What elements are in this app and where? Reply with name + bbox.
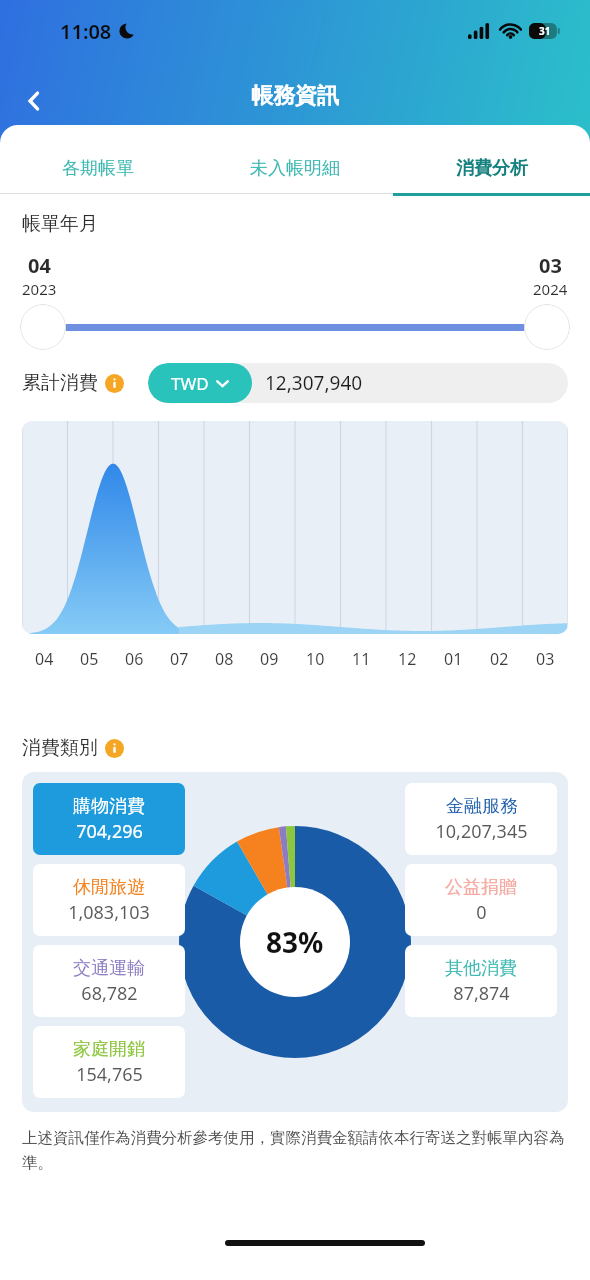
button[interactable]: 金融服務 <box>405 783 557 855</box>
staticText: 154,765 <box>76 1062 143 1087</box>
staticText: 87,874 <box>453 981 510 1006</box>
staticText: 04 <box>35 648 54 670</box>
staticText: 06 <box>125 648 144 670</box>
button[interactable]: 家庭開銷 <box>33 1026 185 1098</box>
staticText: 金融服務 <box>446 795 518 818</box>
staticText: 2024 <box>533 279 568 299</box>
staticText: 累計消費 <box>22 371 98 395</box>
staticText: 其他消費 <box>445 957 517 980</box>
staticText: 消費分析 <box>456 157 528 180</box>
button[interactable]: 未入帳明細 <box>196 143 393 193</box>
button[interactable]: Back <box>10 77 58 125</box>
staticText: 07 <box>170 648 189 670</box>
staticText: 04 <box>28 252 51 279</box>
button[interactable]: TWD <box>148 363 568 403</box>
staticText: 家庭開銷 <box>73 1038 145 1061</box>
button[interactable]: 公益捐贈 <box>405 864 557 936</box>
staticText: 2023 <box>22 279 57 299</box>
button[interactable]: 交通運輸 <box>33 945 185 1017</box>
staticText: 消費類別 <box>22 736 98 760</box>
staticText: 12,307,940 <box>265 370 363 396</box>
staticText: 10,207,345 <box>435 819 528 844</box>
staticText: 未入帳明細 <box>250 157 340 180</box>
staticText: 09 <box>260 648 279 670</box>
button[interactable]: 消費分析 <box>393 143 590 193</box>
staticText: 1,083,103 <box>68 900 150 925</box>
staticText: 10 <box>306 648 325 670</box>
staticText: 交通運輸 <box>73 957 145 980</box>
button[interactable]: 其他消費 <box>405 945 557 1017</box>
staticText: 上述資訊僅作為消費分析參考使用，實際消費金額請依本行寄送之對帳單內容為準。 <box>22 1128 568 1172</box>
staticText: 公益捐贈 <box>445 876 517 899</box>
staticText: 03 <box>539 252 562 279</box>
staticText: 購物消費 <box>73 795 145 818</box>
staticText: 05 <box>80 648 99 670</box>
staticText: 11:08 <box>60 18 112 45</box>
staticText: 帳單年月 <box>22 212 98 236</box>
staticText: 68,782 <box>81 981 138 1006</box>
staticText: 0 <box>476 900 487 925</box>
staticText: 12 <box>398 648 417 670</box>
staticText: 83% <box>266 923 324 961</box>
staticText: 03 <box>536 648 555 670</box>
staticText: 11 <box>352 648 371 670</box>
staticText: TWD <box>171 372 209 395</box>
button[interactable]: 購物消費 <box>33 783 185 855</box>
staticText: 704,296 <box>76 819 143 844</box>
staticText: 各期帳單 <box>62 157 134 180</box>
button[interactable] <box>20 303 570 351</box>
staticText: 02 <box>490 648 509 670</box>
button[interactable]: 各期帳單 <box>0 143 196 193</box>
staticText: 08 <box>215 648 234 670</box>
button[interactable]: 休閒旅遊 <box>33 864 185 936</box>
staticText: 休閒旅遊 <box>73 876 145 899</box>
staticText: 帳務資訊 <box>251 82 339 110</box>
staticText: 31 <box>539 24 551 38</box>
staticText: 01 <box>444 648 463 670</box>
